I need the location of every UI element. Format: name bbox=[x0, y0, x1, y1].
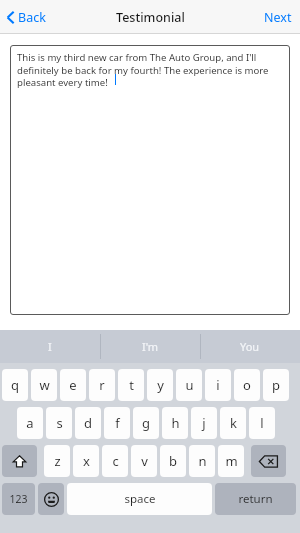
staticText: d bbox=[84, 414, 92, 432]
button[interactable]: a bbox=[17, 407, 43, 439]
staticText: p bbox=[272, 376, 280, 394]
button[interactable]: h bbox=[162, 407, 188, 439]
button[interactable]: c bbox=[102, 445, 128, 477]
staticText: g bbox=[142, 414, 150, 432]
button[interactable]: Back bbox=[6, 9, 46, 26]
staticText: 123 bbox=[9, 492, 28, 506]
button[interactable]: Emoji keyboard bbox=[38, 483, 64, 515]
button[interactable]: return bbox=[215, 483, 296, 515]
staticText: f bbox=[115, 414, 120, 432]
staticText: n bbox=[198, 452, 207, 470]
button[interactable]: Delete bbox=[251, 445, 286, 477]
staticText: b bbox=[169, 452, 177, 470]
staticText: x bbox=[83, 452, 90, 470]
staticText: v bbox=[141, 452, 148, 470]
staticText: z bbox=[54, 452, 61, 470]
staticText: return bbox=[238, 491, 273, 507]
button[interactable]: r bbox=[89, 369, 115, 401]
button[interactable]: space bbox=[67, 483, 212, 515]
button[interactable]: You bbox=[200, 330, 300, 363]
staticText: Next bbox=[264, 9, 292, 26]
button[interactable]: g bbox=[133, 407, 159, 439]
staticText: space bbox=[124, 491, 156, 507]
button[interactable]: l bbox=[249, 407, 275, 439]
staticText: o bbox=[243, 376, 251, 394]
staticText: i bbox=[216, 376, 220, 394]
button[interactable]: y bbox=[147, 369, 173, 401]
staticText: Back bbox=[18, 9, 46, 26]
staticText: Testimonial bbox=[116, 9, 185, 26]
staticText: l bbox=[260, 414, 264, 432]
button[interactable]: w bbox=[31, 369, 57, 401]
staticText: This is my third new car from The Auto G… bbox=[17, 51, 275, 88]
button[interactable]: 123 bbox=[2, 483, 35, 515]
staticText: k bbox=[230, 414, 237, 432]
staticText: I'm bbox=[142, 339, 159, 354]
staticText: u bbox=[185, 376, 194, 394]
button[interactable]: j bbox=[191, 407, 217, 439]
button[interactable]: t bbox=[118, 369, 144, 401]
staticText: a bbox=[26, 414, 34, 432]
staticText: You bbox=[240, 339, 260, 354]
staticText: e bbox=[69, 376, 77, 394]
staticText: t bbox=[129, 376, 134, 394]
staticText: q bbox=[11, 376, 19, 394]
button[interactable]: z bbox=[44, 445, 70, 477]
button[interactable]: s bbox=[46, 407, 72, 439]
button[interactable]: p bbox=[263, 369, 289, 401]
button[interactable]: b bbox=[160, 445, 186, 477]
button[interactable]: u bbox=[176, 369, 202, 401]
button[interactable]: x bbox=[73, 445, 99, 477]
button[interactable]: q bbox=[2, 369, 28, 401]
button[interactable]: n bbox=[189, 445, 215, 477]
staticText: m bbox=[225, 452, 238, 470]
button[interactable]: d bbox=[75, 407, 101, 439]
button[interactable]: v bbox=[131, 445, 157, 477]
button[interactable]: m bbox=[218, 445, 244, 477]
button[interactable]: This is my third new car from The Auto G… bbox=[10, 45, 290, 315]
button[interactable]: Shift bbox=[2, 445, 37, 477]
button[interactable]: I'm bbox=[100, 330, 200, 363]
button[interactable]: i bbox=[205, 369, 231, 401]
button[interactable]: e bbox=[60, 369, 86, 401]
staticText: s bbox=[56, 414, 63, 432]
button[interactable]: Next bbox=[264, 9, 292, 26]
button[interactable]: f bbox=[104, 407, 130, 439]
button[interactable]: k bbox=[220, 407, 246, 439]
button[interactable]: o bbox=[234, 369, 260, 401]
staticText: r bbox=[99, 376, 105, 394]
staticText: I bbox=[48, 339, 52, 354]
staticText: h bbox=[171, 414, 180, 432]
staticText: w bbox=[39, 376, 50, 394]
staticText: c bbox=[112, 452, 119, 470]
staticText: j bbox=[202, 414, 206, 432]
staticText: y bbox=[157, 376, 164, 394]
